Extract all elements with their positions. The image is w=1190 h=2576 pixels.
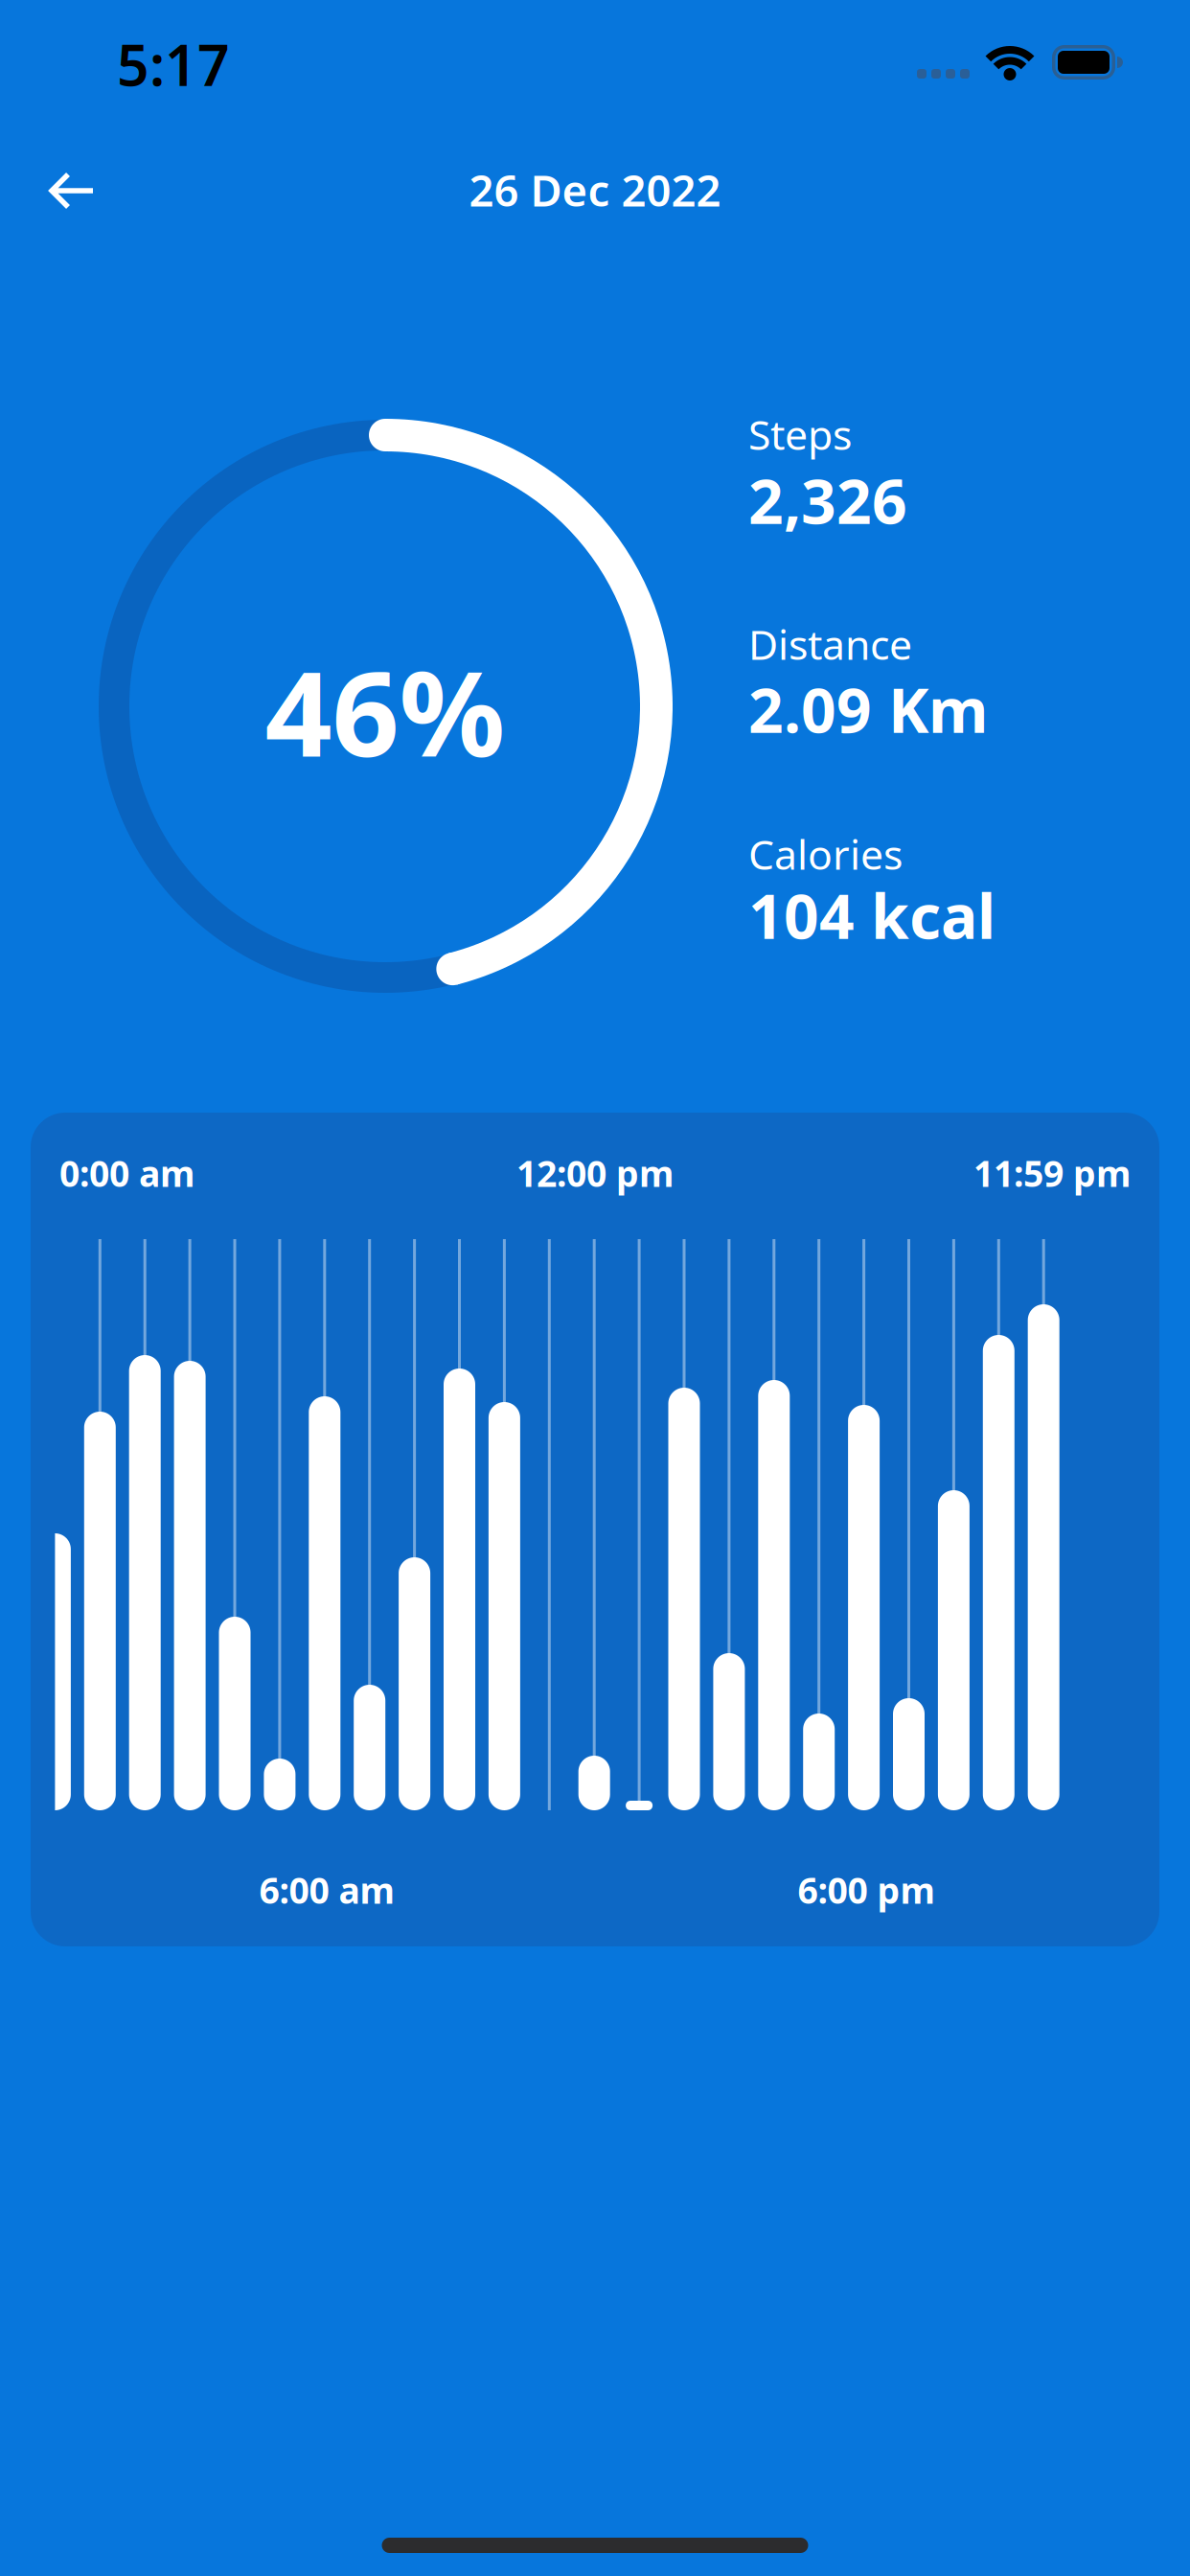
staticText: 2.09 Km xyxy=(748,668,988,750)
staticText: 46% xyxy=(265,633,505,789)
staticText: 6:00 am xyxy=(259,1866,394,1914)
staticText: 2,326 xyxy=(748,460,907,541)
staticText: Distance xyxy=(748,617,912,671)
staticText: 0:00 am xyxy=(59,1149,195,1197)
staticText: 6:00 pm xyxy=(798,1866,935,1914)
staticText: 5:17 xyxy=(117,27,230,101)
staticText: 12:00 pm xyxy=(516,1149,674,1197)
staticText: Calories xyxy=(748,827,903,881)
staticText: 11:59 pm xyxy=(973,1149,1131,1197)
staticText: 26 Dec 2022 xyxy=(469,161,721,219)
button[interactable]: Back xyxy=(29,157,113,224)
staticText: Steps xyxy=(748,407,852,461)
staticText: 104 kcal xyxy=(748,874,995,956)
